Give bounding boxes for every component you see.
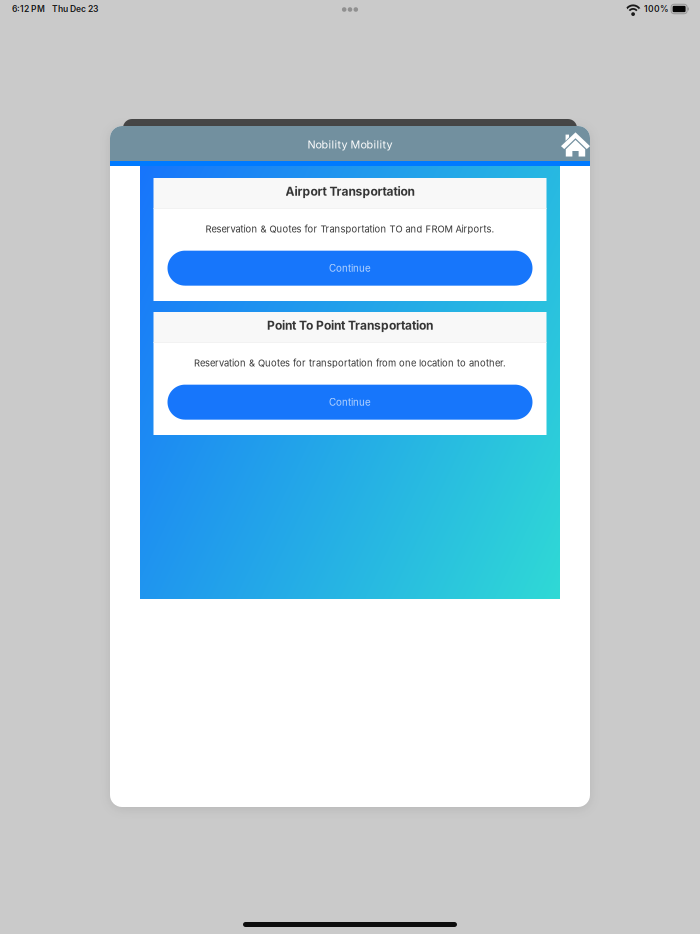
button[interactable]: Continue [167,385,532,420]
staticText: Continue [329,262,371,274]
staticText: 100% [644,4,669,14]
staticText: Thu Dec 23 [52,4,98,14]
button[interactable]: Home [553,127,590,160]
staticText: Reservation & Quotes for transportation … [194,357,506,369]
staticText: Nobility Mobility [307,138,392,151]
staticText: 6:12 PM [12,4,45,14]
staticText: Point To Point Transportation [267,318,433,333]
staticText: Reservation & Quotes for Transportation … [205,223,494,235]
staticText: Continue [329,396,371,408]
button[interactable]: Continue [167,251,532,286]
staticText: Airport Transportation [285,184,414,199]
